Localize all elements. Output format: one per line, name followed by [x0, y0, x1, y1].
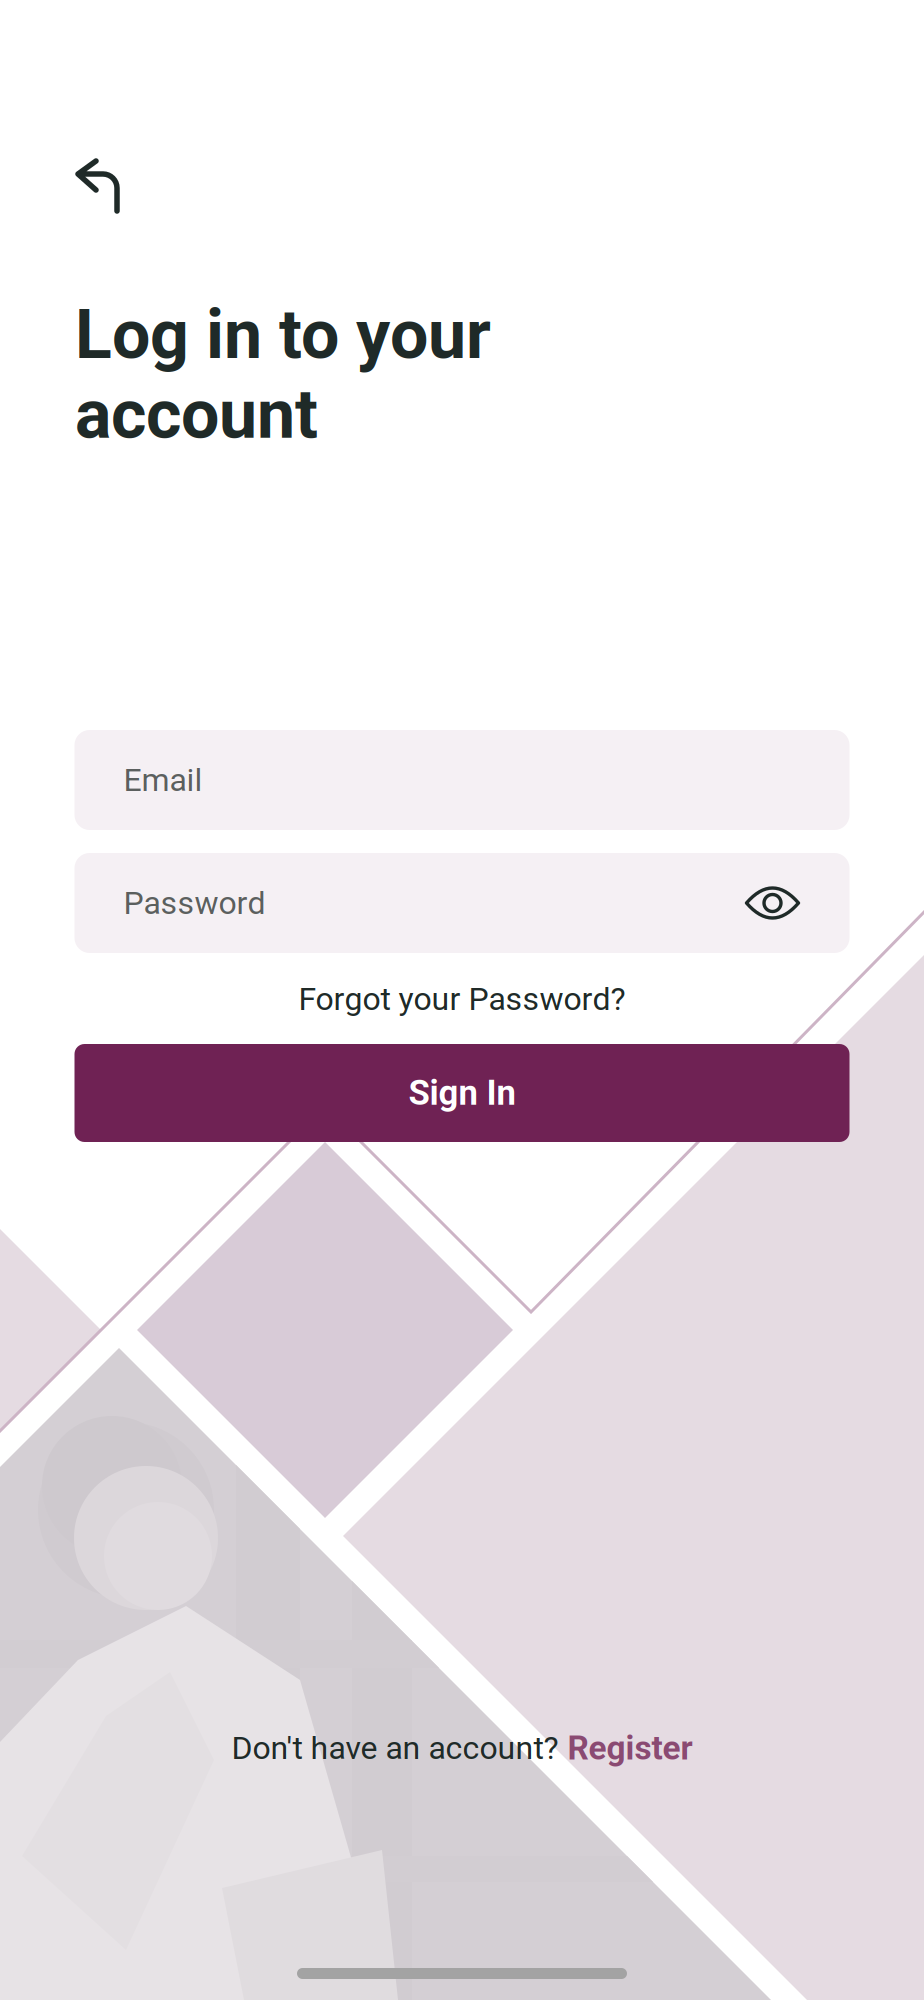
button[interactable]: Show password	[744, 886, 800, 920]
staticText: Email	[123, 761, 202, 799]
button[interactable]: Sign In	[74, 1044, 849, 1142]
staticText: Register	[567, 1728, 692, 1768]
button[interactable]: Back	[75, 158, 127, 220]
staticText: Don't have an account?	[231, 1729, 558, 1767]
staticText: Password	[123, 884, 265, 922]
staticText: Sign In	[408, 1073, 515, 1113]
staticText: Forgot your Password?	[298, 980, 625, 1018]
staticText: Log in to your account	[75, 295, 491, 454]
button[interactable]: Forgot your Password?	[74, 971, 849, 1027]
button[interactable]: Don't have an account?	[231, 1718, 692, 1778]
